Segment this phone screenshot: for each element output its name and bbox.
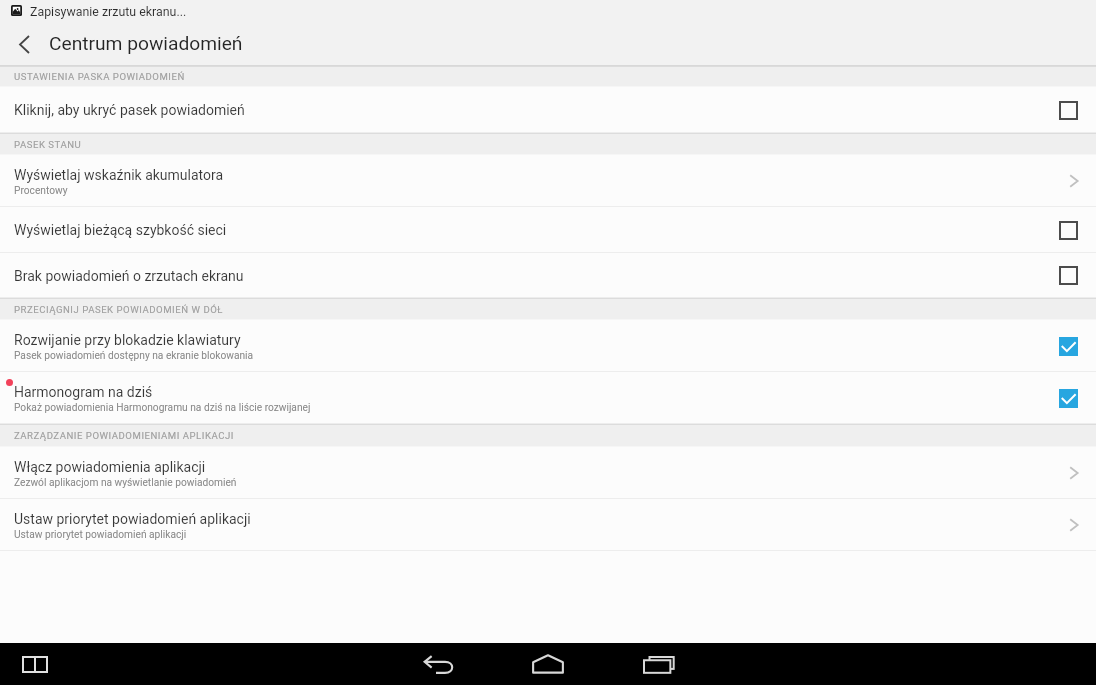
staticText: Zapisywanie zrzutu ekranu... (30, 4, 187, 19)
staticText: Wyświetlaj bieżącą szybkość sieci (14, 222, 227, 238)
staticText: PRZECIĄGNIJ PASEK POWIADOMIEŃ W DÓŁ (14, 304, 224, 315)
staticText: USTAWIENIA PASKA POWIADOMIEŃ (14, 71, 185, 82)
staticText: PASEK STANU (14, 139, 82, 150)
staticText: Włącz powiadomienia aplikacji (14, 459, 206, 475)
button[interactable]: Ustaw priorytet powiadomień aplikacji (0, 499, 1096, 551)
button[interactable]: Rozwijanie przy blokadzie klawiatury (0, 320, 1096, 372)
button[interactable]: Home (524, 643, 572, 685)
button[interactable]: Brak powiadomień o zrzutach ekranu (0, 253, 1096, 298)
button[interactable]: Recent apps (634, 643, 682, 685)
button[interactable]: Włącz powiadomienia aplikacji (0, 447, 1096, 499)
button[interactable]: Split screen (13, 643, 57, 685)
staticText: Procentowy (14, 185, 68, 197)
staticText: Brak powiadomień o zrzutach ekranu (14, 268, 244, 284)
button[interactable]: Wyświetlaj bieżącą szybkość sieci (0, 207, 1096, 253)
staticText: Wyświetlaj wskaźnik akumulatora (14, 167, 224, 183)
staticText: Ustaw priorytet powiadomień aplikacji (14, 529, 187, 541)
button[interactable]: Back (0, 23, 44, 65)
staticText: Kliknij, aby ukryć pasek powiadomień (14, 102, 245, 118)
staticText: Pasek powiadomień dostępny na ekranie bl… (14, 350, 254, 362)
staticText: Harmonogram na dziś (14, 384, 153, 400)
button[interactable]: Harmonogram na dziś (0, 372, 1096, 424)
staticText: ZARZĄDZANIE POWIADOMIENIAMI APLIKACJI (14, 430, 234, 441)
staticText: Rozwijanie przy blokadzie klawiatury (14, 332, 241, 348)
button[interactable]: Back (415, 643, 463, 685)
button[interactable]: Wyświetlaj wskaźnik akumulatora (0, 155, 1096, 207)
staticText: Zezwól aplikacjom na wyświetlanie powiad… (14, 477, 237, 489)
staticText: Centrum powiadomień (49, 32, 243, 55)
staticText: Ustaw priorytet powiadomień aplikacji (14, 511, 251, 527)
button[interactable]: Kliknij, aby ukryć pasek powiadomień (0, 87, 1096, 133)
staticText: Pokaż powiadomienia Harmonogramu na dziś… (14, 402, 311, 414)
